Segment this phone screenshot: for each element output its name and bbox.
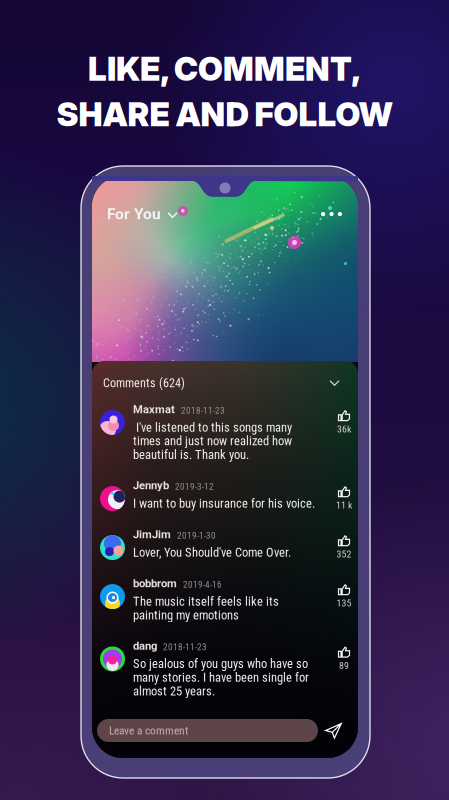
- staticText: 11 k: [336, 499, 352, 511]
- staticText: 89: [339, 660, 349, 671]
- staticText: Lover, You Should've Come Over.: [133, 545, 291, 560]
- staticText: 2018-11-23: [181, 405, 225, 416]
- button[interactable]: JimJim: [100, 530, 353, 560]
- staticText: bobbrom: [133, 577, 177, 590]
- staticText: 2019-1-30: [177, 530, 216, 541]
- button[interactable]: Comments (624): [88, 361, 354, 405]
- staticText: For You: [107, 205, 161, 223]
- staticText: The music itself feels like its painting…: [133, 594, 279, 622]
- staticText: Maxmat: [133, 403, 175, 416]
- button[interactable]: Jennyb: [100, 481, 353, 511]
- staticText: SHARE AND FOLLOW: [56, 94, 392, 134]
- button[interactable]: More options: [321, 212, 342, 216]
- button[interactable]: Leave a comment: [97, 719, 318, 742]
- staticText: I've listened to this songs many times a…: [133, 420, 292, 462]
- button[interactable]: dang: [100, 641, 353, 698]
- button[interactable]: bobbrom: [100, 579, 353, 622]
- button[interactable]: For You: [107, 205, 177, 223]
- staticText: 2019-3-12: [175, 481, 214, 492]
- staticText: 36k: [337, 423, 351, 435]
- staticText: I want to buy insurance for his voice.: [133, 496, 315, 511]
- staticText: dang: [133, 639, 157, 652]
- staticText: JimJim: [133, 528, 171, 541]
- staticText: 352: [336, 548, 351, 560]
- staticText: 135: [336, 597, 351, 609]
- staticText: So jealous of you guys who have so many …: [133, 656, 309, 698]
- staticText: Comments (624): [103, 376, 185, 390]
- staticText: 2018-11-23: [163, 642, 207, 652]
- staticText: Jennyb: [133, 479, 169, 492]
- button[interactable]: Send: [325, 722, 342, 738]
- staticText: LIKE, COMMENT,: [88, 49, 361, 88]
- staticText: Leave a comment: [109, 724, 188, 737]
- staticText: 2019-4-16: [183, 579, 222, 590]
- button[interactable]: Maxmat: [100, 405, 353, 462]
